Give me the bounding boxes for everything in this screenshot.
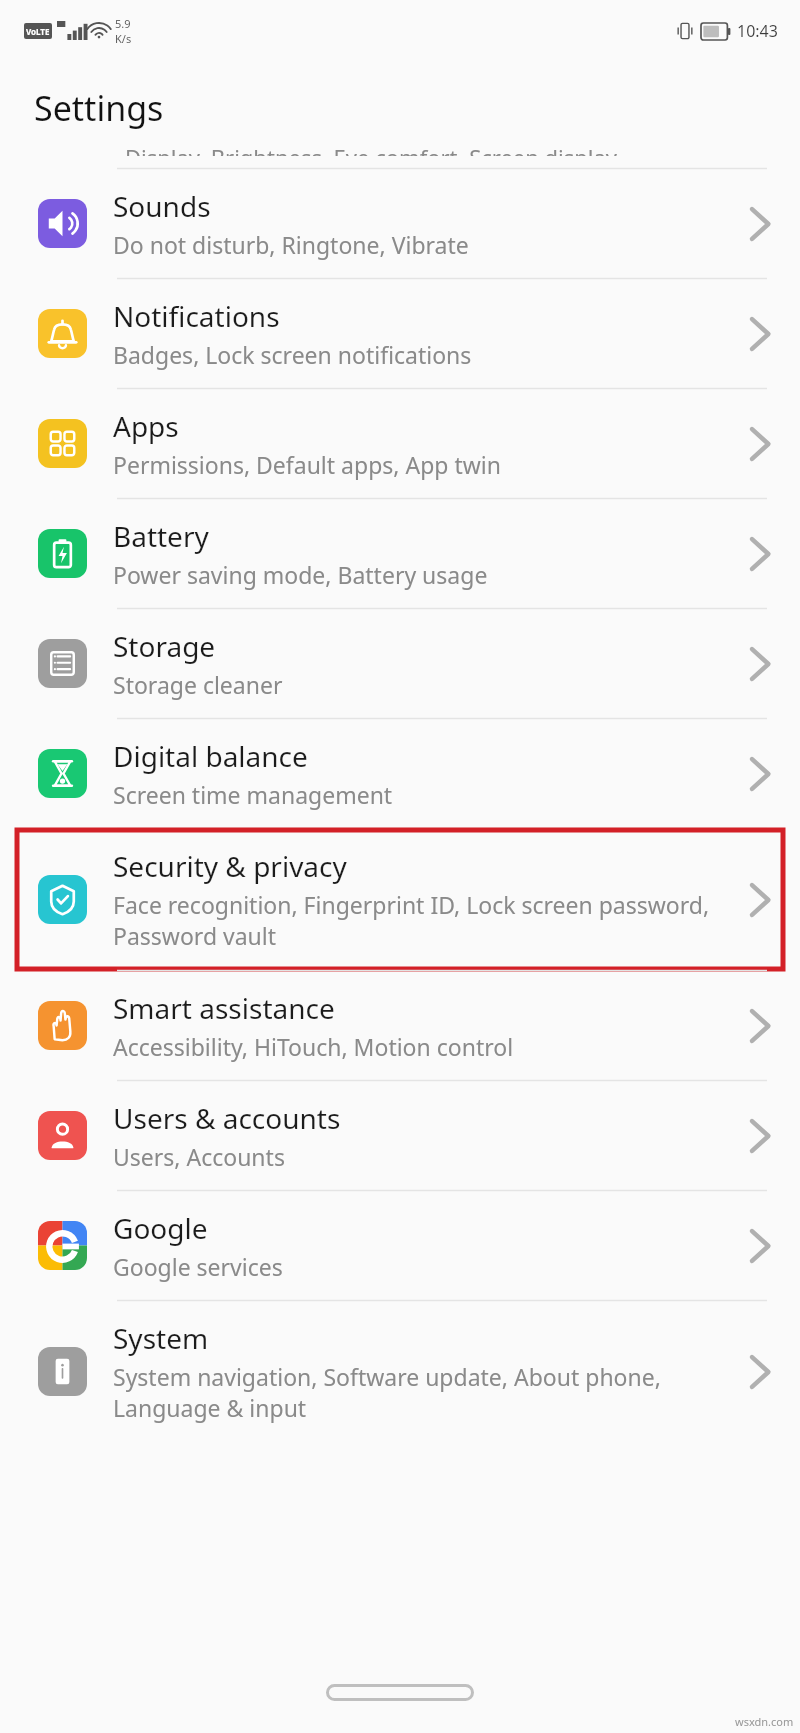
button[interactable]: Storage: [0, 609, 800, 718]
other: Open Storage: [750, 647, 770, 681]
other: Open Digital balance: [750, 757, 770, 791]
other: Open Smart assistance: [750, 1009, 770, 1043]
staticText: Display, Brightness, Eye comfort, Screen…: [125, 142, 618, 156]
button[interactable]: Google: [0, 1191, 800, 1300]
staticText: Do not disturb, Ringtone, Vibrate: [113, 229, 469, 260]
button[interactable]: System: [0, 1301, 800, 1442]
staticText: Security & privacy: [113, 847, 347, 885]
other: Open Battery: [750, 537, 770, 571]
staticText: 10:43: [737, 20, 778, 42]
other: Open Security & privacy: [750, 883, 770, 917]
staticText: Smart assistance: [113, 989, 335, 1027]
other: Open Apps: [750, 427, 770, 461]
staticText: Storage: [113, 627, 216, 665]
staticText: Storage cleaner: [113, 669, 283, 700]
staticText: K/s: [115, 31, 132, 46]
button[interactable]: Digital balance: [0, 719, 800, 828]
staticText: System navigation, Software update, Abou…: [113, 1361, 750, 1424]
button[interactable]: Battery: [0, 499, 800, 608]
other: Open Users & accounts: [750, 1119, 770, 1153]
staticText: wsxdn.com: [735, 1714, 794, 1729]
button[interactable]: Notifications: [0, 279, 800, 388]
staticText: Users & accounts: [113, 1099, 341, 1137]
button[interactable]: Smart assistance: [0, 971, 800, 1080]
staticText: VoLTE: [26, 26, 50, 37]
button[interactable]: Sounds: [0, 169, 800, 278]
staticText: Notifications: [113, 297, 280, 335]
staticText: Accessibility, HiTouch, Motion control: [113, 1031, 514, 1062]
staticText: Power saving mode, Battery usage: [113, 559, 488, 590]
staticText: Users, Accounts: [113, 1141, 285, 1172]
staticText: 5.9: [115, 16, 131, 31]
button[interactable]: Security & privacy: [0, 829, 800, 970]
other: Open Notifications: [750, 317, 770, 351]
staticText: Face recognition, Fingerprint ID, Lock s…: [113, 889, 750, 952]
button[interactable]: Apps: [0, 389, 800, 498]
staticText: Badges, Lock screen notifications: [113, 339, 472, 370]
other: Open Sounds: [750, 207, 770, 241]
staticText: Sounds: [113, 187, 211, 225]
staticText: Battery: [113, 517, 209, 555]
staticText: Google services: [113, 1251, 283, 1282]
staticText: Screen time management: [113, 779, 393, 810]
staticText: Google: [113, 1209, 208, 1247]
staticText: System: [113, 1319, 209, 1357]
button[interactable]: Users & accounts: [0, 1081, 800, 1190]
other: Open Google: [750, 1229, 770, 1263]
other: Open System: [750, 1355, 770, 1389]
staticText: Permissions, Default apps, App twin: [113, 449, 501, 480]
staticText: Apps: [113, 407, 179, 445]
staticText: Digital balance: [113, 737, 308, 775]
staticText: Settings: [34, 85, 164, 131]
